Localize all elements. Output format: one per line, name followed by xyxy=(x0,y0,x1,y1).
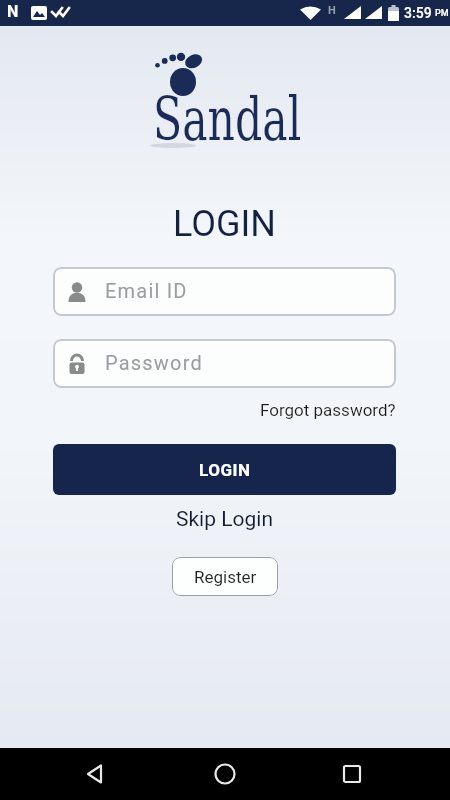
staticText: PM xyxy=(435,8,449,19)
staticText: LOGIN xyxy=(199,460,251,480)
staticText: 3:59 xyxy=(404,5,432,21)
staticText: N xyxy=(7,2,19,21)
staticText: Skip Login xyxy=(176,507,274,532)
staticText: H xyxy=(328,4,336,17)
staticText: Email ID xyxy=(105,279,188,302)
staticText: Register xyxy=(194,567,257,587)
staticText: Sandal xyxy=(153,84,301,154)
staticText: Password xyxy=(105,351,203,374)
staticText: Forgot password? xyxy=(260,400,396,420)
staticText: LOGIN xyxy=(173,203,277,245)
